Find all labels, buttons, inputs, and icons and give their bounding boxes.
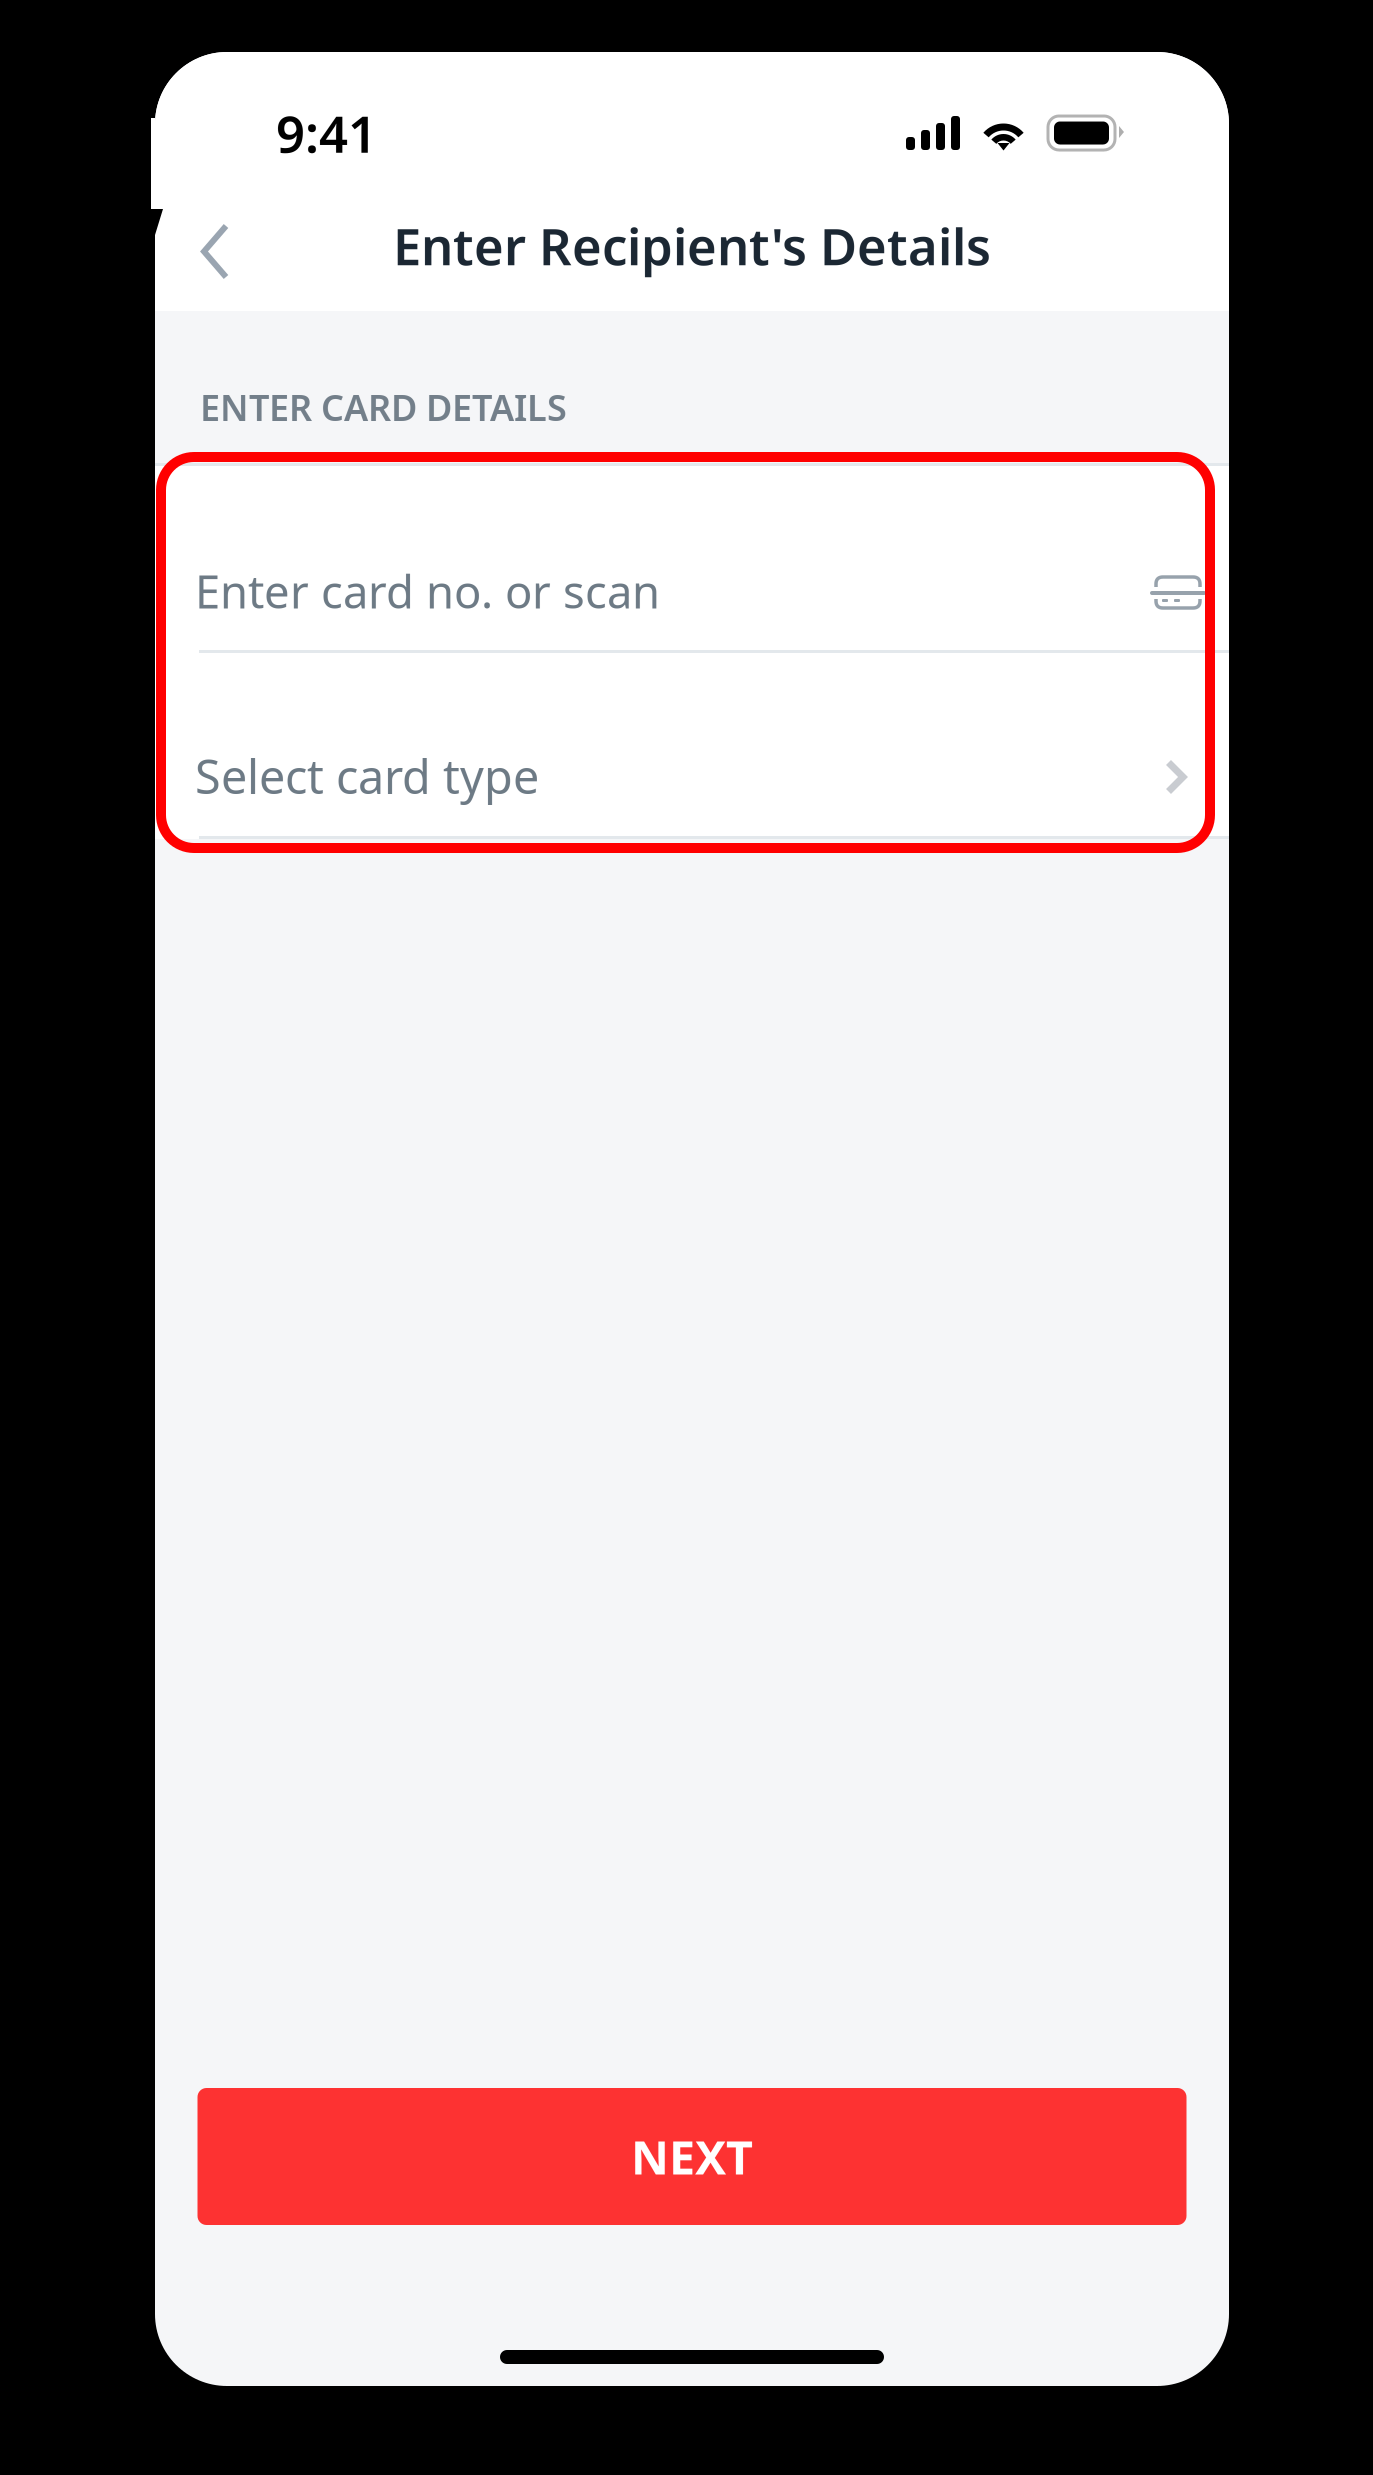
staticText: NEXT: [631, 2125, 753, 2187]
staticText: Enter Recipient's Details: [393, 212, 991, 279]
button[interactable]: Back: [169, 211, 261, 315]
button[interactable]: Select card type: [155, 653, 1229, 836]
staticText: Enter card no. or scan: [195, 561, 660, 621]
staticText: 9:41: [276, 99, 377, 167]
staticText: ENTER CARD DETAILS: [200, 383, 567, 431]
button[interactable]: NEXT: [197, 2088, 1186, 2225]
staticText: Select card type: [195, 745, 539, 807]
button[interactable]: Enter card no. or scan: [155, 466, 1229, 650]
